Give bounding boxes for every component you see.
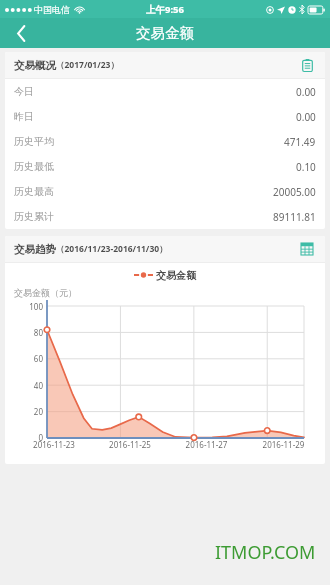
staticText: 昨日 (14, 110, 34, 123)
button[interactable]: 历史累计 (5, 204, 325, 229)
staticText: 交易金额 (156, 269, 196, 282)
staticText: 89111.81 (273, 210, 316, 224)
staticText: 历史平均 (14, 135, 54, 148)
staticText: 0 (38, 432, 43, 443)
button[interactable]: Table view (298, 240, 316, 258)
staticText: 中国电信 (34, 4, 70, 15)
button[interactable]: 交易趋势 (5, 236, 325, 262)
staticText: 2016-11-27 (171, 439, 242, 450)
staticText: 0.00 (296, 85, 316, 99)
staticText: 交易趋势 (14, 243, 56, 256)
staticText: 100 (29, 301, 43, 312)
staticText: （2017/01/23） (56, 59, 119, 71)
button[interactable]: 历史最高 (5, 179, 325, 204)
staticText: ITMOP.COM (215, 540, 316, 565)
staticText: 80 (33, 327, 43, 338)
staticText: 0.10 (296, 160, 316, 174)
staticText: 历史最低 (14, 160, 54, 173)
staticText: 交易金额（元） (14, 287, 77, 298)
button[interactable]: 交易概况 (5, 52, 325, 78)
button[interactable]: 昨日 (5, 104, 325, 129)
staticText: 上午9:56 (146, 3, 184, 16)
button[interactable]: 历史最低 (5, 154, 325, 179)
staticText: 471.49 (284, 135, 316, 149)
staticText: 交易金额 (136, 24, 194, 42)
staticText: 20005.00 (273, 185, 316, 199)
staticText: 2016-11-23 (19, 439, 89, 450)
staticText: 今日 (14, 85, 34, 98)
staticText: 历史最高 (14, 185, 54, 198)
staticText: 历史累计 (14, 210, 54, 223)
button[interactable]: 今日 (5, 79, 325, 104)
staticText: 交易概况 (14, 59, 56, 72)
button[interactable]: 历史平均 (5, 129, 325, 154)
staticText: 40 (33, 380, 43, 391)
staticText: 20 (33, 406, 43, 417)
staticText: 60 (33, 353, 43, 364)
staticText: （2016/11/23-2016/11/30） (56, 243, 168, 255)
staticText: 2016-11-25 (95, 439, 165, 450)
button[interactable]: Transaction details (298, 56, 316, 74)
staticText: 0.00 (296, 110, 316, 124)
staticText: 2016-11-29 (248, 439, 319, 450)
button[interactable]: Back (0, 18, 42, 48)
